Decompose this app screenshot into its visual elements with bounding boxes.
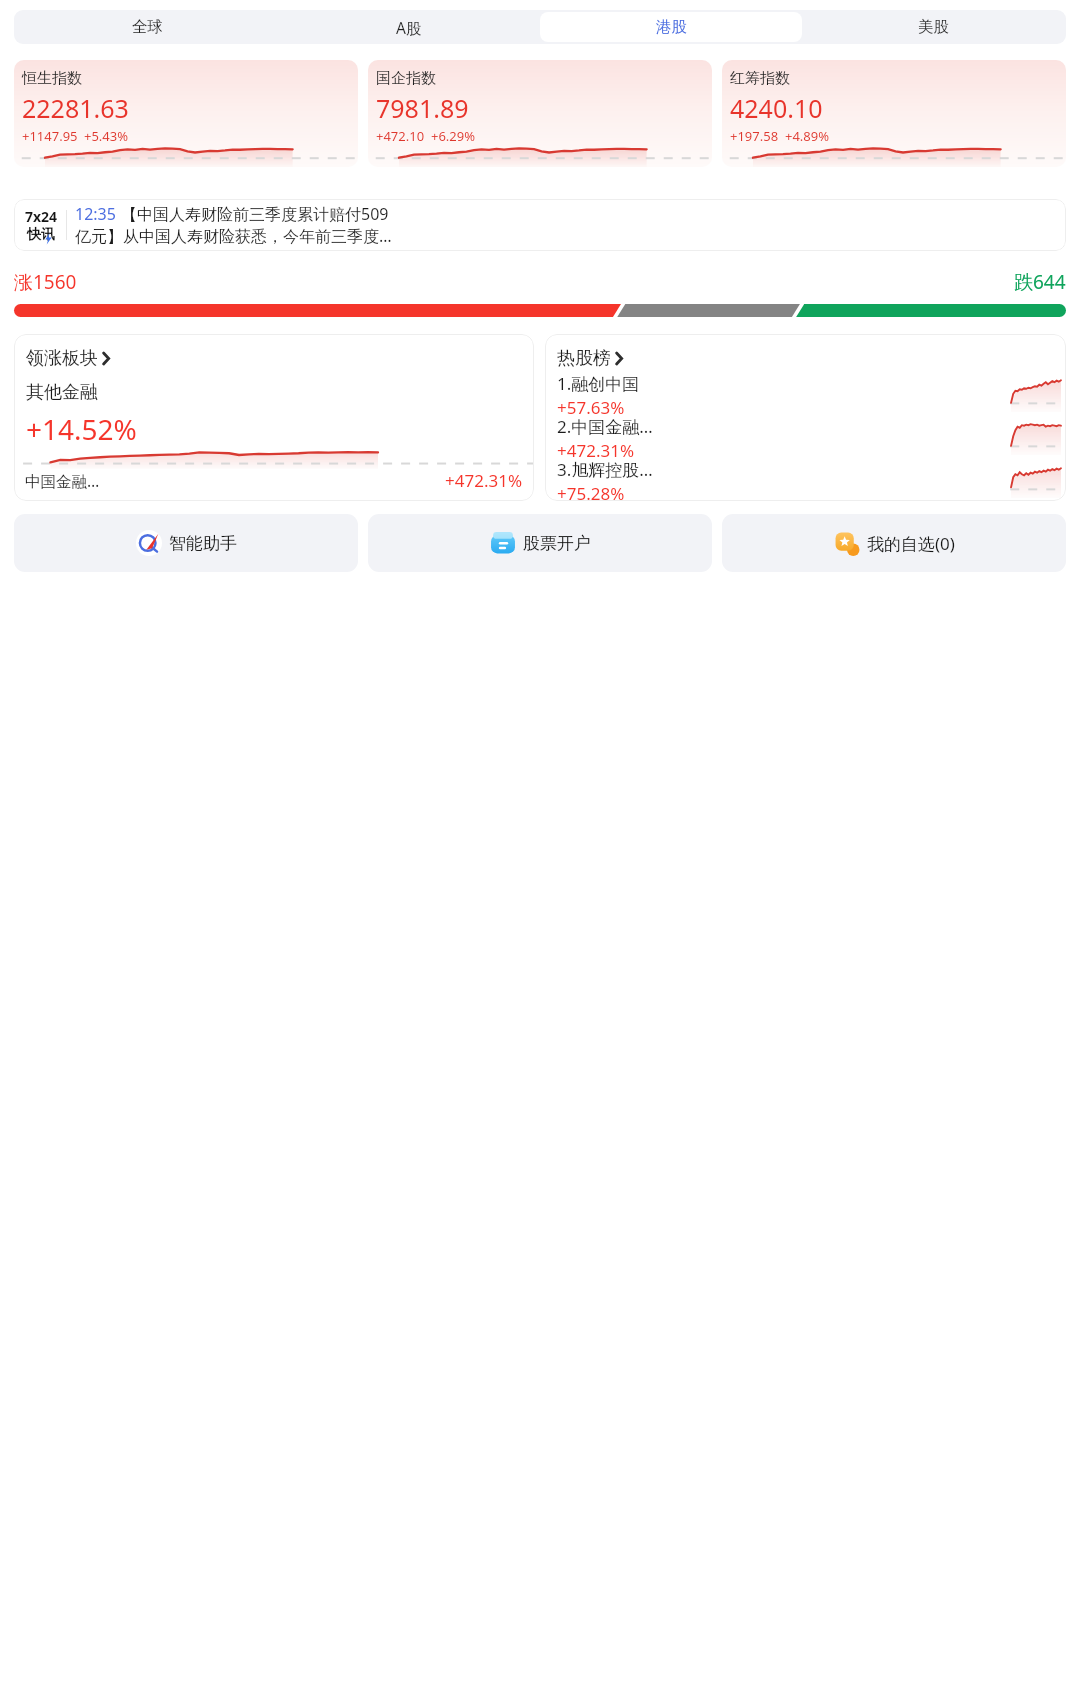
- staticText: 4240.10: [730, 91, 823, 125]
- staticText: +6.29%: [431, 127, 476, 145]
- button[interactable]: 美股: [802, 12, 1064, 42]
- staticText: 我的自选(0): [867, 532, 955, 555]
- staticText: 股票开户: [523, 533, 591, 554]
- staticText: 全球: [132, 17, 163, 37]
- other: 我的自选: [834, 530, 860, 556]
- other: 智能助手: [136, 530, 162, 556]
- staticText: +14.52%: [26, 410, 137, 448]
- button[interactable]: 恒生指数: [14, 60, 358, 167]
- staticText: 恒生指数: [22, 69, 82, 88]
- staticText: +57.63%: [557, 396, 625, 415]
- staticText: 22281.63: [22, 91, 129, 125]
- button[interactable]: 2.中国金融…: [545, 415, 1066, 458]
- staticText: 3.旭辉控股…: [557, 458, 653, 481]
- staticText: 7x24: [25, 207, 58, 226]
- staticText: 中国金融…: [25, 470, 100, 491]
- staticText: +472.31%: [445, 469, 523, 492]
- staticText: 港股: [656, 17, 687, 37]
- button[interactable]: 3.旭辉控股…: [545, 458, 1066, 501]
- staticText: 跌644: [1014, 269, 1066, 295]
- staticText: 智能助手: [169, 533, 237, 554]
- staticText: 7981.89: [376, 91, 469, 125]
- staticText: A股: [396, 17, 422, 38]
- staticText: +472.10: [376, 127, 425, 145]
- staticText: 1.融创中国: [557, 372, 640, 395]
- staticText: 亿元】从中国人寿财险获悉，今年前三季度…: [75, 225, 392, 247]
- staticText: 【中国人寿财险前三季度累计赔付509: [121, 203, 389, 225]
- other: 股票开户: [490, 530, 516, 556]
- staticText: 热股榜: [557, 347, 611, 370]
- staticText: 其他金融: [26, 381, 98, 404]
- staticText: 涨1560: [14, 269, 77, 295]
- button[interactable]: 领涨板块: [14, 334, 534, 501]
- button[interactable]: 我的自选: [722, 514, 1066, 572]
- staticText: +5.43%: [84, 127, 129, 145]
- staticText: 红筹指数: [730, 69, 790, 88]
- button[interactable]: A股: [278, 12, 540, 42]
- staticText: 领涨板块: [26, 347, 98, 370]
- staticText: 快讯: [27, 226, 55, 244]
- staticText: 美股: [918, 17, 949, 37]
- staticText: +1147.95: [22, 127, 78, 145]
- button[interactable]: 港股: [540, 12, 802, 42]
- button[interactable]: 热股榜: [545, 334, 1066, 501]
- staticText: 12:35: [75, 203, 116, 225]
- staticText: 2.中国金融…: [557, 415, 653, 438]
- button[interactable]: 全球: [16, 12, 278, 42]
- button[interactable]: 国企指数: [368, 60, 712, 167]
- button[interactable]: 1.融创中国: [545, 372, 1066, 415]
- staticText: +4.89%: [785, 127, 830, 145]
- button[interactable]: 智能助手: [14, 514, 358, 572]
- staticText: 国企指数: [376, 69, 436, 88]
- button[interactable]: 红筹指数: [722, 60, 1066, 167]
- button[interactable]: 股票开户: [368, 514, 712, 572]
- button[interactable]: 7x24: [14, 199, 1066, 251]
- staticText: +75.28%: [557, 482, 625, 501]
- staticText: +472.31%: [557, 439, 635, 458]
- staticText: +197.58: [730, 127, 779, 145]
